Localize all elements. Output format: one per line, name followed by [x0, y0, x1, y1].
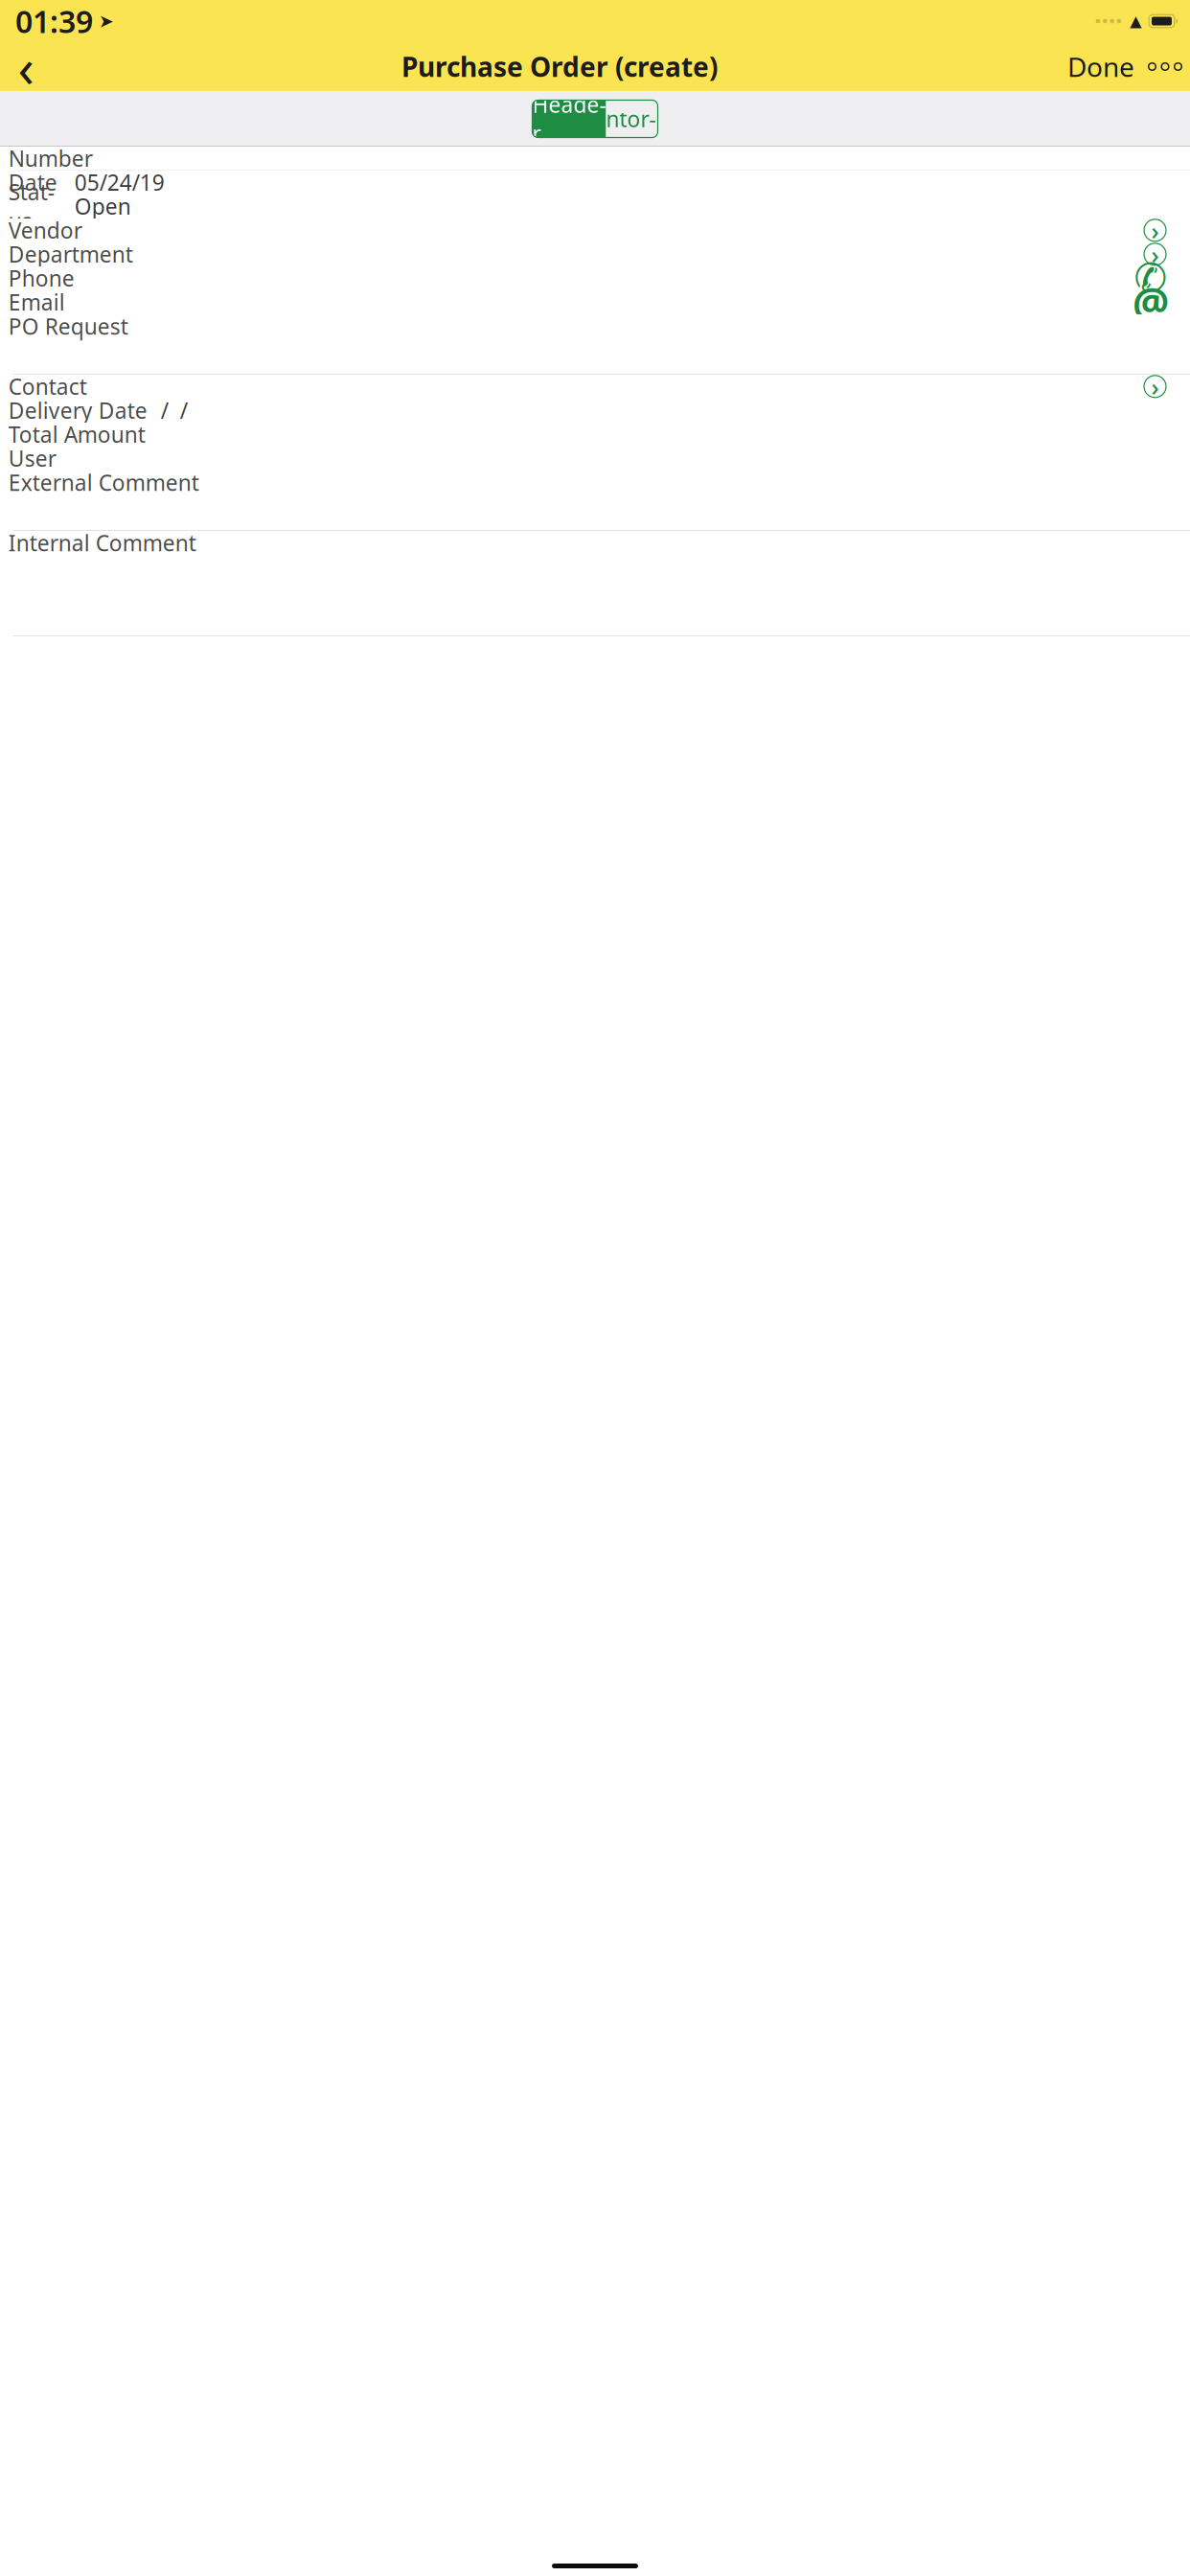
- staticText: Number: [8, 144, 93, 173]
- staticText: Open: [74, 192, 131, 221]
- button[interactable]: Back: [0, 45, 52, 89]
- button[interactable]: Delivery Date: [0, 399, 1190, 423]
- button[interactable]: Contact: [0, 375, 1190, 399]
- button[interactable]: Header: [532, 100, 606, 138]
- staticText: External Comment: [8, 468, 199, 497]
- staticText: / /: [161, 396, 188, 425]
- button[interactable]: Phone: [0, 266, 1190, 290]
- staticText: ‹: [18, 31, 34, 102]
- staticText: ›: [1151, 214, 1159, 246]
- button[interactable]: Inventory: [606, 100, 658, 138]
- staticText: ›: [1151, 238, 1159, 270]
- staticText: Department: [8, 240, 133, 269]
- staticText: Vendor: [8, 216, 82, 245]
- button[interactable]: Department: [0, 242, 1190, 266]
- staticText: Email: [8, 288, 65, 317]
- button[interactable]: Vendor: [0, 218, 1190, 242]
- button[interactable]: External Comment: [0, 471, 1190, 531]
- staticText: Done: [1067, 49, 1134, 84]
- staticText: Contact: [8, 372, 87, 401]
- staticText: ✆: [1134, 256, 1167, 301]
- button[interactable]: Done: [1067, 45, 1134, 89]
- button[interactable]: User: [0, 447, 1190, 471]
- staticText: 05/24/19: [74, 168, 165, 197]
- staticText: 01:39: [15, 1, 93, 41]
- button[interactable]: Number: [0, 147, 1190, 171]
- staticText: ➤: [99, 11, 114, 31]
- button[interactable]: Internal Comment: [0, 531, 1190, 636]
- button[interactable]: Email: [0, 290, 1190, 314]
- button[interactable]: PO Request: [0, 314, 1190, 375]
- staticText: Phone: [8, 264, 74, 293]
- staticText: @: [1133, 275, 1169, 329]
- staticText: Internal Comment: [8, 528, 196, 557]
- staticText: PO Request: [8, 312, 128, 341]
- staticText: Inventory: [606, 76, 658, 162]
- staticText: ›: [1151, 370, 1159, 403]
- staticText: Purchase Order (create): [401, 49, 718, 84]
- staticText: Status: [8, 177, 54, 235]
- staticText: Delivery Date: [8, 396, 147, 425]
- staticText: Total Amount: [8, 420, 145, 449]
- staticText: Date: [8, 168, 57, 197]
- staticText: Header: [532, 90, 606, 148]
- button[interactable]: Total Amount: [0, 423, 1190, 447]
- staticText: ▲: [1130, 12, 1141, 30]
- button[interactable]: More options: [1144, 45, 1186, 89]
- staticText: User: [8, 444, 56, 473]
